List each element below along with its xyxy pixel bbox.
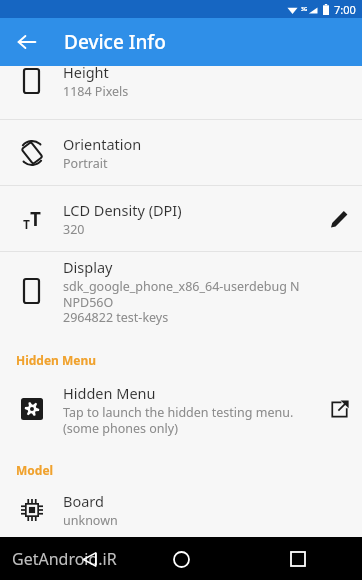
staticText: 3G [301,6,308,13]
button[interactable]: Board [0,482,362,537]
staticText: 7:00 [334,2,356,17]
staticText: Tap to launch the hidden testing menu. (… [63,404,294,436]
staticText: GetAndroid.iR [12,548,117,570]
button[interactable]: Back [8,23,46,61]
staticText: 1184 Pixels [63,83,129,100]
staticText: Height [63,66,109,82]
staticText: Hidden Menu [16,352,97,368]
staticText: Display [63,257,113,277]
staticText: Model [16,462,54,478]
staticText: T [30,206,41,232]
button[interactable]: Hidden Menu [0,372,362,446]
staticText: Orientation [63,134,142,154]
button[interactable]: Orientation [0,120,362,185]
button[interactable]: Action [316,372,362,446]
staticText: unknown [63,512,118,529]
button[interactable]: Recents [278,539,318,579]
staticText: Portrait [63,155,108,172]
staticText: Device Info [64,29,166,55]
staticText: Board [63,491,104,511]
button[interactable]: T [0,186,362,251]
button[interactable]: Height [0,66,362,107]
staticText: 320 [63,221,85,238]
button[interactable]: Action [316,186,362,251]
button[interactable]: Home [161,539,201,579]
staticText: Hidden Menu [63,383,156,403]
staticText: T [23,216,30,232]
button[interactable]: Back [72,542,106,576]
staticText: LCD Density (DPI) [63,200,182,220]
staticText: sdk_google_phone_x86_64-userdebug N NPD5… [63,278,350,325]
button[interactable]: Display [0,252,362,330]
